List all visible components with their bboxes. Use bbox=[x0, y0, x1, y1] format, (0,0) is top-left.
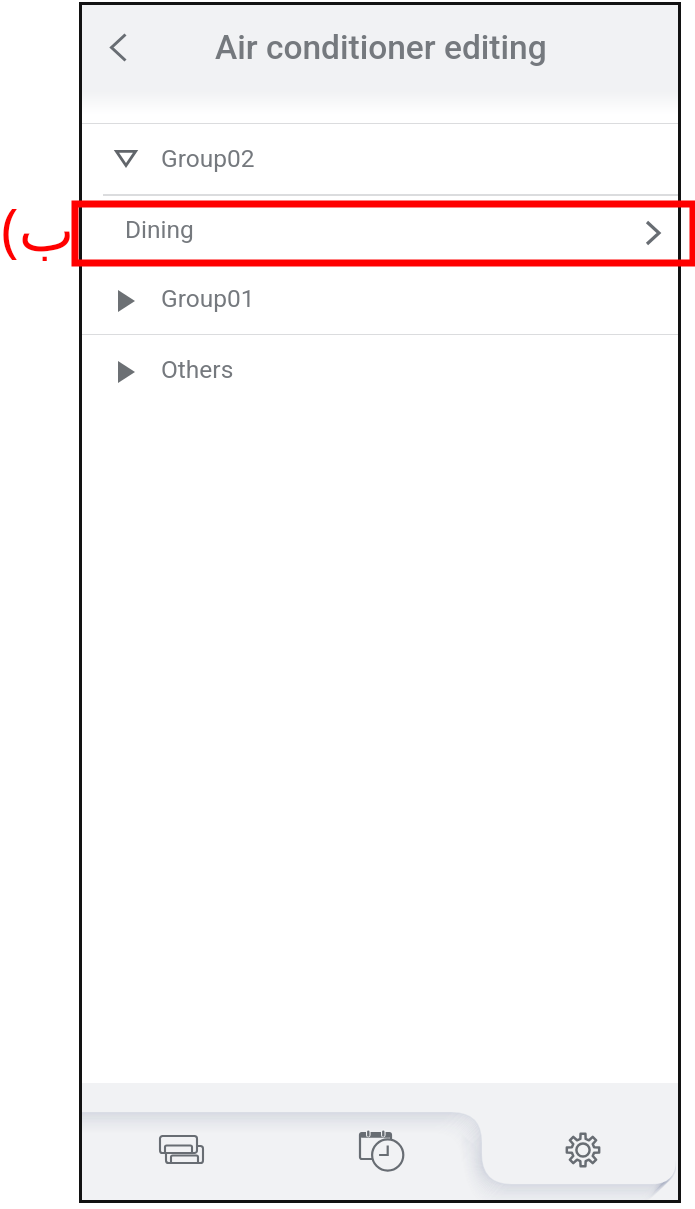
staticText: Dining bbox=[125, 215, 194, 244]
button[interactable]: Air conditioners bbox=[79, 1083, 279, 1203]
button[interactable]: Settings bbox=[480, 1083, 681, 1203]
staticText: Group02 bbox=[161, 144, 255, 173]
button[interactable]: Others bbox=[79, 335, 681, 405]
button[interactable]: Dining bbox=[79, 196, 681, 264]
button[interactable]: Schedule bbox=[279, 1083, 480, 1203]
staticText: (ب) bbox=[1, 188, 79, 276]
staticText: Air conditioner editing bbox=[215, 28, 547, 67]
button[interactable]: Group02 bbox=[79, 124, 681, 194]
button[interactable]: Back bbox=[86, 15, 150, 79]
staticText: Others bbox=[161, 355, 234, 384]
button[interactable]: Group01 bbox=[79, 264, 681, 334]
staticText: Group01 bbox=[161, 284, 255, 313]
